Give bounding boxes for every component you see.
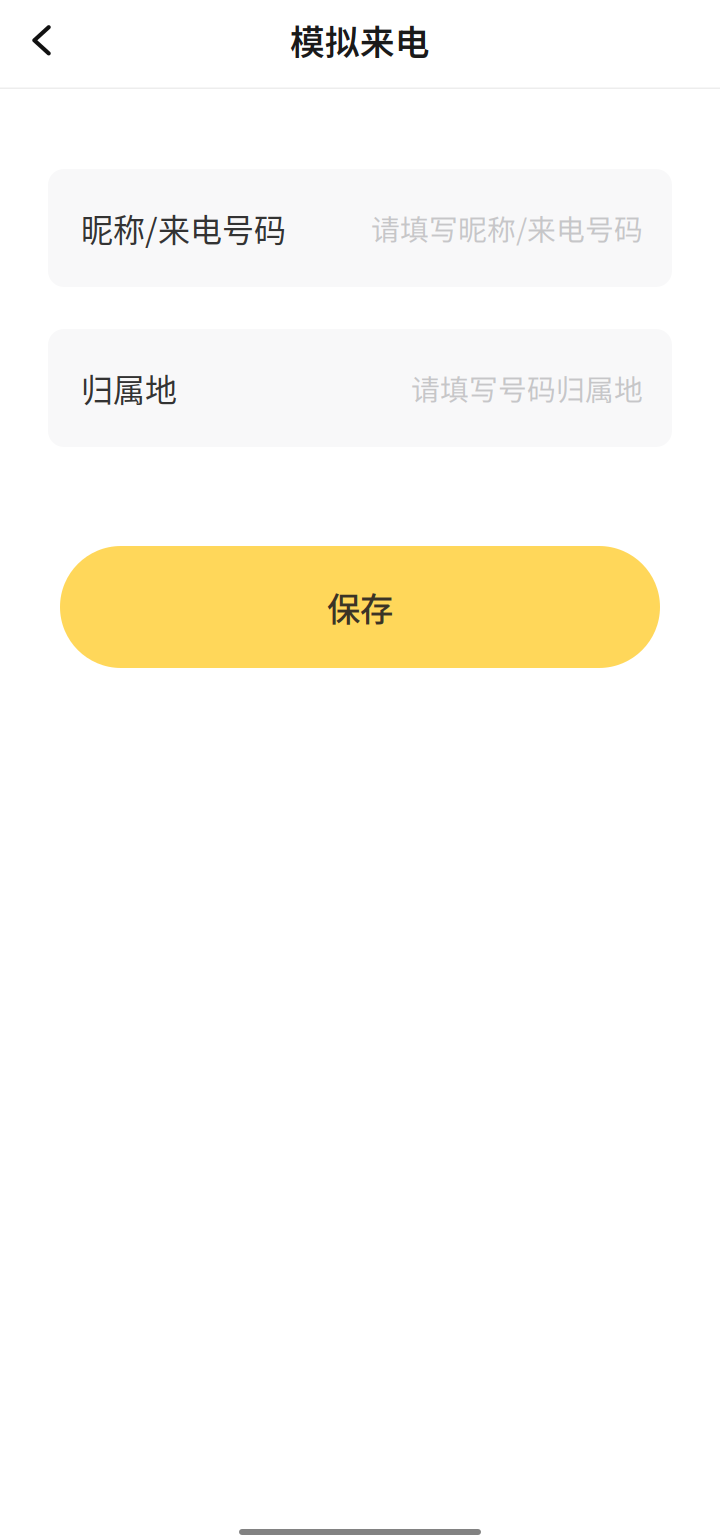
button[interactable]: 返回: [0, 0, 84, 80]
staticText: 昵称/来电号码: [81, 205, 286, 251]
staticText: 归属地: [81, 365, 177, 411]
staticText: 保存: [327, 583, 393, 631]
button[interactable]: 昵称/来电号码: [48, 169, 672, 287]
staticText: 请填写昵称/来电号码: [371, 207, 643, 249]
staticText: 请填写号码归属地: [411, 367, 643, 409]
button[interactable]: 保存: [60, 546, 660, 668]
button[interactable]: 归属地: [48, 329, 672, 447]
staticText: 模拟来电: [290, 15, 430, 65]
